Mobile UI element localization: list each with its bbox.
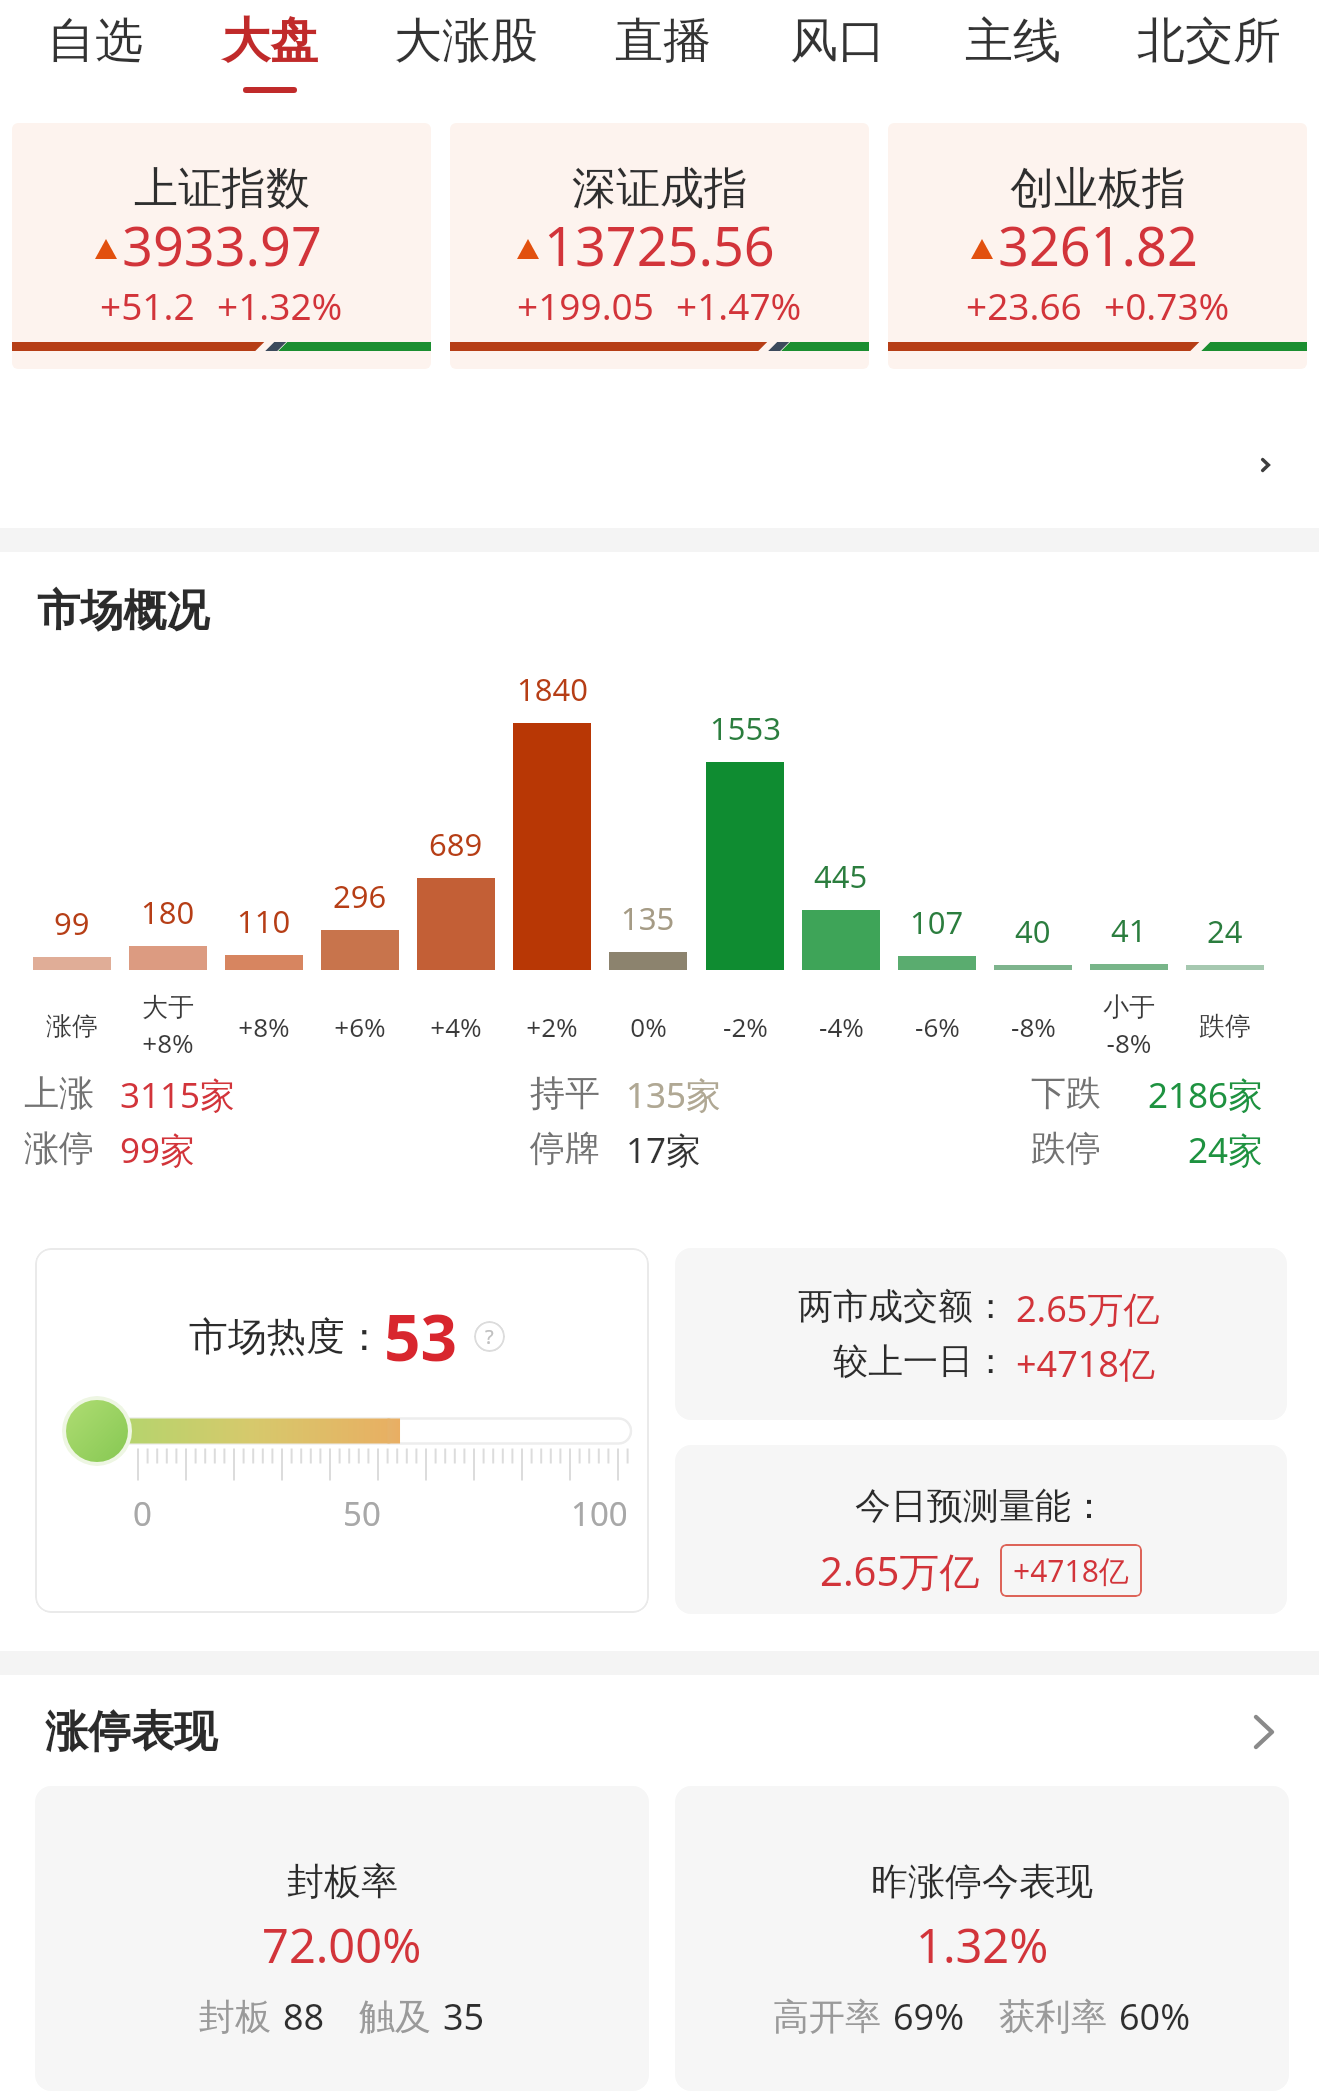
staticText: +51.2 bbox=[100, 280, 195, 330]
staticText: 今日预测量能： bbox=[855, 1483, 1107, 1528]
button[interactable]: 今日预测量能： bbox=[675, 1445, 1287, 1614]
staticText: +1.47% bbox=[676, 280, 802, 330]
button[interactable]: 更多指数 bbox=[1241, 441, 1289, 489]
staticText: 99 bbox=[54, 902, 90, 940]
staticText: 深证成指 bbox=[572, 161, 748, 216]
staticText: 创业板指 bbox=[1010, 161, 1186, 216]
staticText: 24家 bbox=[1188, 1126, 1264, 1174]
staticText: 2.65万亿 bbox=[1016, 1284, 1160, 1333]
staticText: 跌停 bbox=[1199, 1010, 1251, 1043]
button[interactable]: -8% 40 bbox=[994, 723, 1072, 1063]
staticText: 上涨 bbox=[24, 1071, 94, 1115]
button[interactable]: 北交所 bbox=[1134, 0, 1284, 104]
button[interactable]: 深证成指 bbox=[450, 123, 869, 369]
staticText: 72.00% bbox=[262, 1913, 422, 1977]
staticText: +1.32% bbox=[217, 280, 343, 330]
staticText: 50 bbox=[343, 1491, 381, 1536]
staticText: 13725.56 bbox=[544, 208, 775, 282]
staticText: -8% bbox=[1011, 1009, 1056, 1044]
button[interactable]: 大于+8% 180 bbox=[129, 723, 207, 1063]
button[interactable]: 两市成交额： bbox=[675, 1248, 1287, 1420]
button[interactable]: 大涨股 bbox=[391, 0, 541, 104]
staticText: 3115家 bbox=[120, 1071, 236, 1119]
button[interactable]: -2% 1553 bbox=[706, 723, 784, 1063]
button[interactable]: +4% 689 bbox=[417, 723, 495, 1063]
staticText: 100 bbox=[571, 1491, 628, 1536]
button[interactable]: 风口 bbox=[783, 0, 893, 104]
staticText: 涨停 bbox=[46, 1010, 98, 1043]
staticText: 1553 bbox=[710, 707, 781, 745]
staticText: 持平 bbox=[530, 1071, 600, 1115]
staticText: 445 bbox=[814, 855, 868, 893]
staticText: +199.05 bbox=[517, 280, 654, 330]
button[interactable]: 上证指数 bbox=[12, 123, 431, 369]
button[interactable]: 大盘 bbox=[215, 0, 325, 104]
staticText: 35 bbox=[443, 1992, 485, 2041]
staticText: 昨涨停今表现 bbox=[871, 1858, 1093, 1905]
staticText: 17家 bbox=[626, 1126, 702, 1174]
button[interactable]: 主线 bbox=[958, 0, 1068, 104]
button[interactable]: 涨停 99 bbox=[33, 723, 111, 1063]
staticText: 180 bbox=[141, 891, 195, 929]
staticText: 跌停 bbox=[1031, 1126, 1101, 1170]
staticText: +2% bbox=[526, 1009, 578, 1044]
staticText: 大盘 bbox=[222, 11, 318, 71]
staticText: 296 bbox=[333, 875, 387, 913]
button[interactable]: +6% 296 bbox=[321, 723, 399, 1063]
staticText: 涨停表现 bbox=[45, 1705, 217, 1759]
staticText: 689 bbox=[429, 823, 483, 861]
staticText: 封板 bbox=[199, 1994, 271, 2039]
button[interactable]: 自选 bbox=[40, 0, 150, 104]
staticText: +0.73% bbox=[1104, 280, 1230, 330]
staticText: 2186家 bbox=[1148, 1071, 1264, 1119]
staticText: 40 bbox=[1015, 910, 1051, 948]
staticText: 上证指数 bbox=[134, 161, 310, 216]
staticText: 24 bbox=[1207, 910, 1243, 948]
staticText: +23.66 bbox=[966, 280, 1082, 330]
staticText: 大涨股 bbox=[394, 11, 538, 71]
staticText: 0 bbox=[133, 1491, 152, 1536]
staticText: 135家 bbox=[626, 1071, 722, 1119]
button[interactable]: 昨涨停今表现 bbox=[675, 1786, 1289, 2091]
staticText: 135 bbox=[621, 897, 675, 935]
staticText: 0% bbox=[630, 1009, 667, 1044]
staticText: 53 bbox=[384, 1293, 458, 1380]
staticText: +4718亿 bbox=[1013, 1550, 1129, 1591]
staticText: 高开率 bbox=[773, 1994, 881, 2039]
staticText: 69% bbox=[893, 1992, 965, 2041]
button[interactable]: 直播 bbox=[608, 0, 718, 104]
staticText: 2.65万亿 bbox=[820, 1543, 980, 1598]
staticText: +6% bbox=[334, 1009, 386, 1044]
staticText: 88 bbox=[283, 1992, 325, 2041]
staticText: 市场概况 bbox=[37, 584, 209, 638]
staticText: -4% bbox=[819, 1009, 864, 1044]
button[interactable]: 封板率 bbox=[35, 1786, 649, 2091]
staticText: 3933.97 bbox=[122, 208, 322, 282]
staticText: 110 bbox=[237, 900, 291, 938]
staticText: 3261.82 bbox=[998, 208, 1198, 282]
staticText: 封板率 bbox=[287, 1858, 398, 1905]
staticText: 涨停 bbox=[24, 1126, 94, 1170]
button[interactable]: +8% 110 bbox=[225, 723, 303, 1063]
staticText: -2% bbox=[723, 1009, 768, 1044]
button[interactable]: 0% 135 bbox=[609, 723, 687, 1063]
staticText: 触及 bbox=[359, 1994, 431, 2039]
staticText: 直播 bbox=[615, 11, 711, 71]
staticText: 41 bbox=[1111, 909, 1147, 947]
button[interactable]: 跌停 24 bbox=[1186, 723, 1264, 1063]
button[interactable]: 创业板指 bbox=[888, 123, 1307, 369]
button[interactable]: 0 bbox=[35, 1248, 649, 1613]
staticText: 两市成交额： bbox=[798, 1284, 1008, 1328]
button[interactable]: 涨停表现 bbox=[45, 1705, 1274, 1759]
button[interactable]: 小于-8% 41 bbox=[1090, 723, 1168, 1063]
staticText: 自选 bbox=[47, 11, 143, 71]
staticText: 小于 -8% bbox=[1103, 991, 1155, 1061]
button[interactable]: -6% 107 bbox=[898, 723, 976, 1063]
staticText: 北交所 bbox=[1137, 11, 1281, 71]
button[interactable]: +2% 1840 bbox=[513, 723, 591, 1063]
staticText: 市场热度： bbox=[189, 1312, 384, 1361]
staticText: 获利率 bbox=[999, 1994, 1107, 2039]
button[interactable]: -4% 445 bbox=[802, 723, 880, 1063]
staticText: +8% bbox=[238, 1009, 290, 1044]
staticText: +4% bbox=[430, 1009, 482, 1044]
